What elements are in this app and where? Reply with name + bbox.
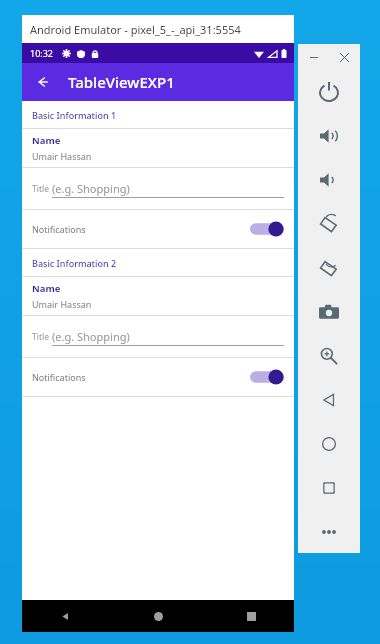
button[interactable]: Back	[30, 69, 56, 95]
button[interactable]: Back	[52, 603, 78, 629]
staticText: TableViewEXP1	[68, 72, 175, 92]
button[interactable]: Screenshot	[298, 290, 360, 334]
button[interactable]: Home	[145, 603, 171, 629]
button[interactable]: Overview	[298, 466, 360, 510]
staticText: Name	[32, 282, 61, 295]
staticText: Name	[32, 134, 61, 147]
button[interactable]: Name	[22, 129, 294, 167]
staticText: Android Emulator - pixel_5_-_api_31:5554	[30, 22, 241, 37]
button[interactable]: Recents	[238, 603, 264, 629]
staticText: Umair Hassan	[32, 150, 92, 162]
button[interactable]: Close	[336, 49, 352, 65]
staticText: Umair Hassan	[32, 298, 92, 310]
staticText: (e.g. Shopping)	[52, 181, 130, 196]
staticText: Title	[32, 183, 49, 195]
button[interactable]: Volume up	[298, 114, 360, 158]
staticText: (e.g. Shopping)	[52, 329, 130, 344]
button[interactable]: Home	[298, 422, 360, 466]
button[interactable]: Rotate right	[298, 246, 360, 290]
staticText: Basic Information 2	[32, 257, 117, 269]
button[interactable]: Notifications	[22, 358, 294, 396]
button[interactable]: Minimize	[306, 49, 322, 65]
button[interactable]: Notifications	[22, 210, 294, 248]
button[interactable]: More	[298, 510, 360, 553]
staticText: Notifications	[32, 223, 86, 235]
button[interactable]: Title	[22, 316, 294, 357]
button[interactable]: Title	[22, 168, 294, 209]
button[interactable]: Volume down	[298, 158, 360, 202]
button[interactable]: Name	[22, 277, 294, 315]
staticText: Notifications	[32, 371, 86, 383]
staticText: Title	[32, 331, 49, 343]
button[interactable]: Zoom	[298, 334, 360, 378]
staticText: Basic Information 1	[32, 109, 117, 121]
button[interactable]: Rotate left	[298, 202, 360, 246]
staticText: 10:32	[30, 47, 54, 59]
button[interactable]: Power	[298, 70, 360, 114]
button[interactable]: Back	[298, 378, 360, 422]
